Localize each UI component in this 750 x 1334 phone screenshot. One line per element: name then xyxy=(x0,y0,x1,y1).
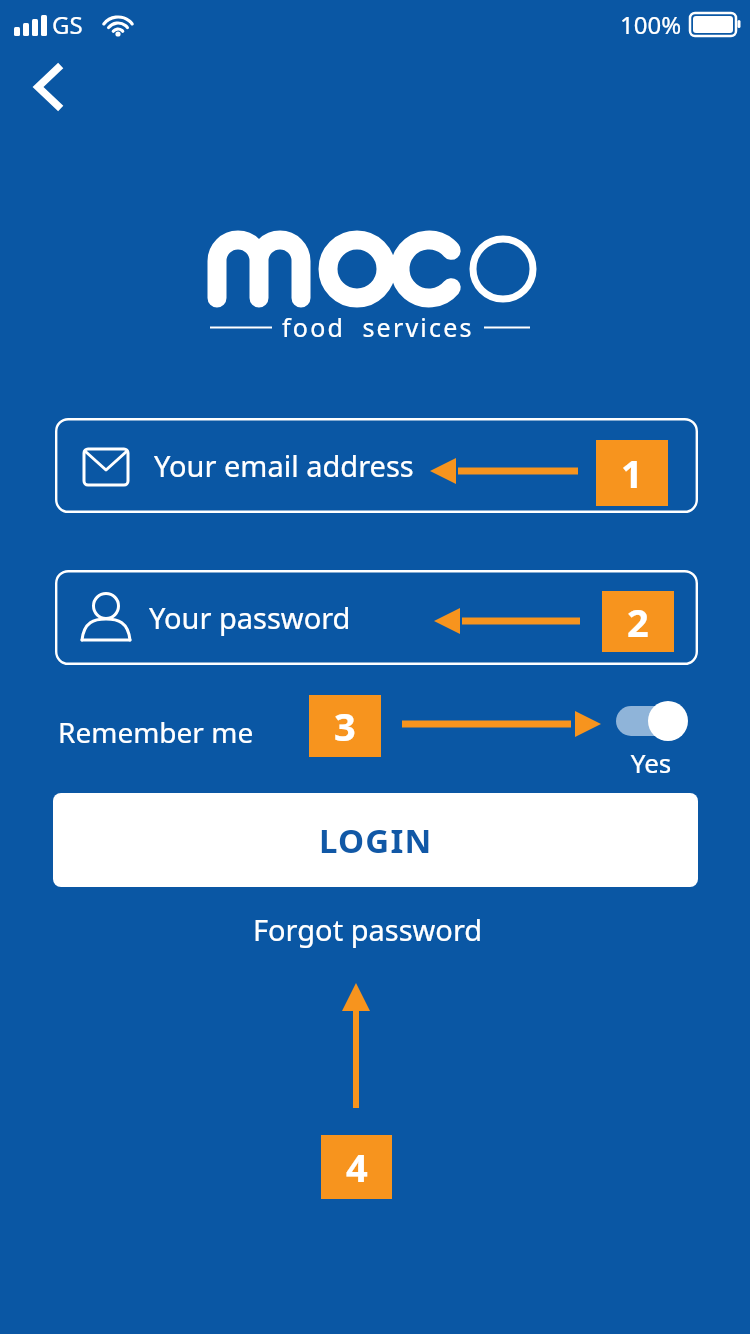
staticText: LOGIN xyxy=(319,818,433,863)
staticText: food services xyxy=(282,310,474,344)
button[interactable]: Remember me toggle, on xyxy=(612,698,692,744)
staticText: Yes xyxy=(606,745,696,780)
staticText: Your password xyxy=(149,598,351,637)
staticText: 100% xyxy=(620,8,682,41)
staticText: Forgot password xyxy=(253,910,483,949)
staticText: 2 xyxy=(627,596,649,648)
staticText: 4 xyxy=(346,1141,368,1193)
staticText: Remember me xyxy=(58,713,254,751)
button[interactable]: LOGIN xyxy=(53,793,698,887)
staticText: 3 xyxy=(334,700,356,752)
button[interactable] xyxy=(55,418,698,513)
staticText: Your email address xyxy=(154,446,414,485)
button[interactable]: Back xyxy=(12,56,84,118)
button[interactable]: Forgot password xyxy=(240,905,495,953)
staticText: 1 xyxy=(621,447,643,499)
button[interactable]: Your password xyxy=(55,570,698,665)
staticText: GS xyxy=(52,8,83,41)
